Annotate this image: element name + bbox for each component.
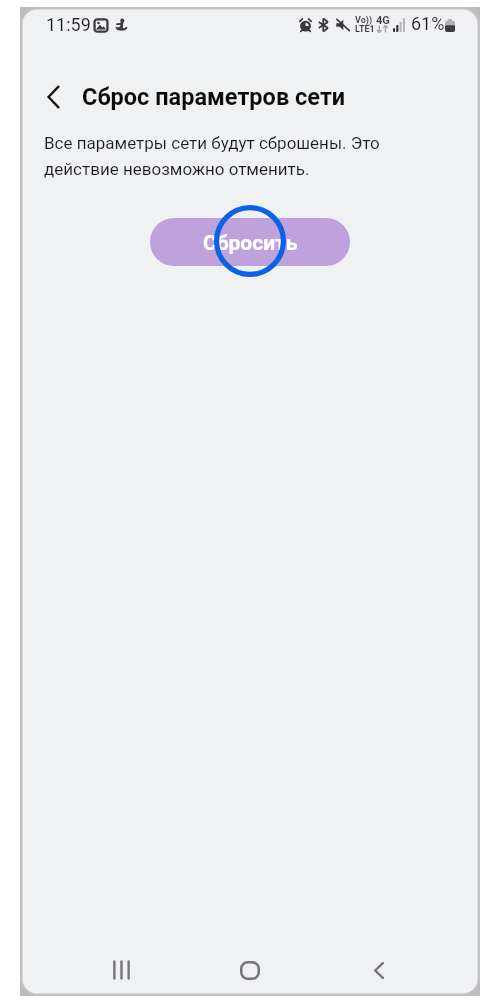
button[interactable]: Сбросить <box>150 218 350 266</box>
button[interactable]: Back <box>352 939 406 995</box>
staticText: 11:59 <box>46 14 91 35</box>
button[interactable]: Back <box>33 74 73 120</box>
button[interactable]: Recent apps <box>94 939 148 995</box>
staticText: Сброс параметров сети <box>82 83 346 111</box>
staticText: 61% <box>411 13 445 34</box>
staticText: Vo)) <box>355 15 373 26</box>
staticText: LTE1 <box>355 24 375 35</box>
staticText: 4G <box>376 14 390 27</box>
button[interactable]: Home <box>223 939 277 995</box>
staticText: Все параметры сети будут сброшены. Это д… <box>44 133 394 180</box>
staticText: Сбросить <box>203 231 298 256</box>
